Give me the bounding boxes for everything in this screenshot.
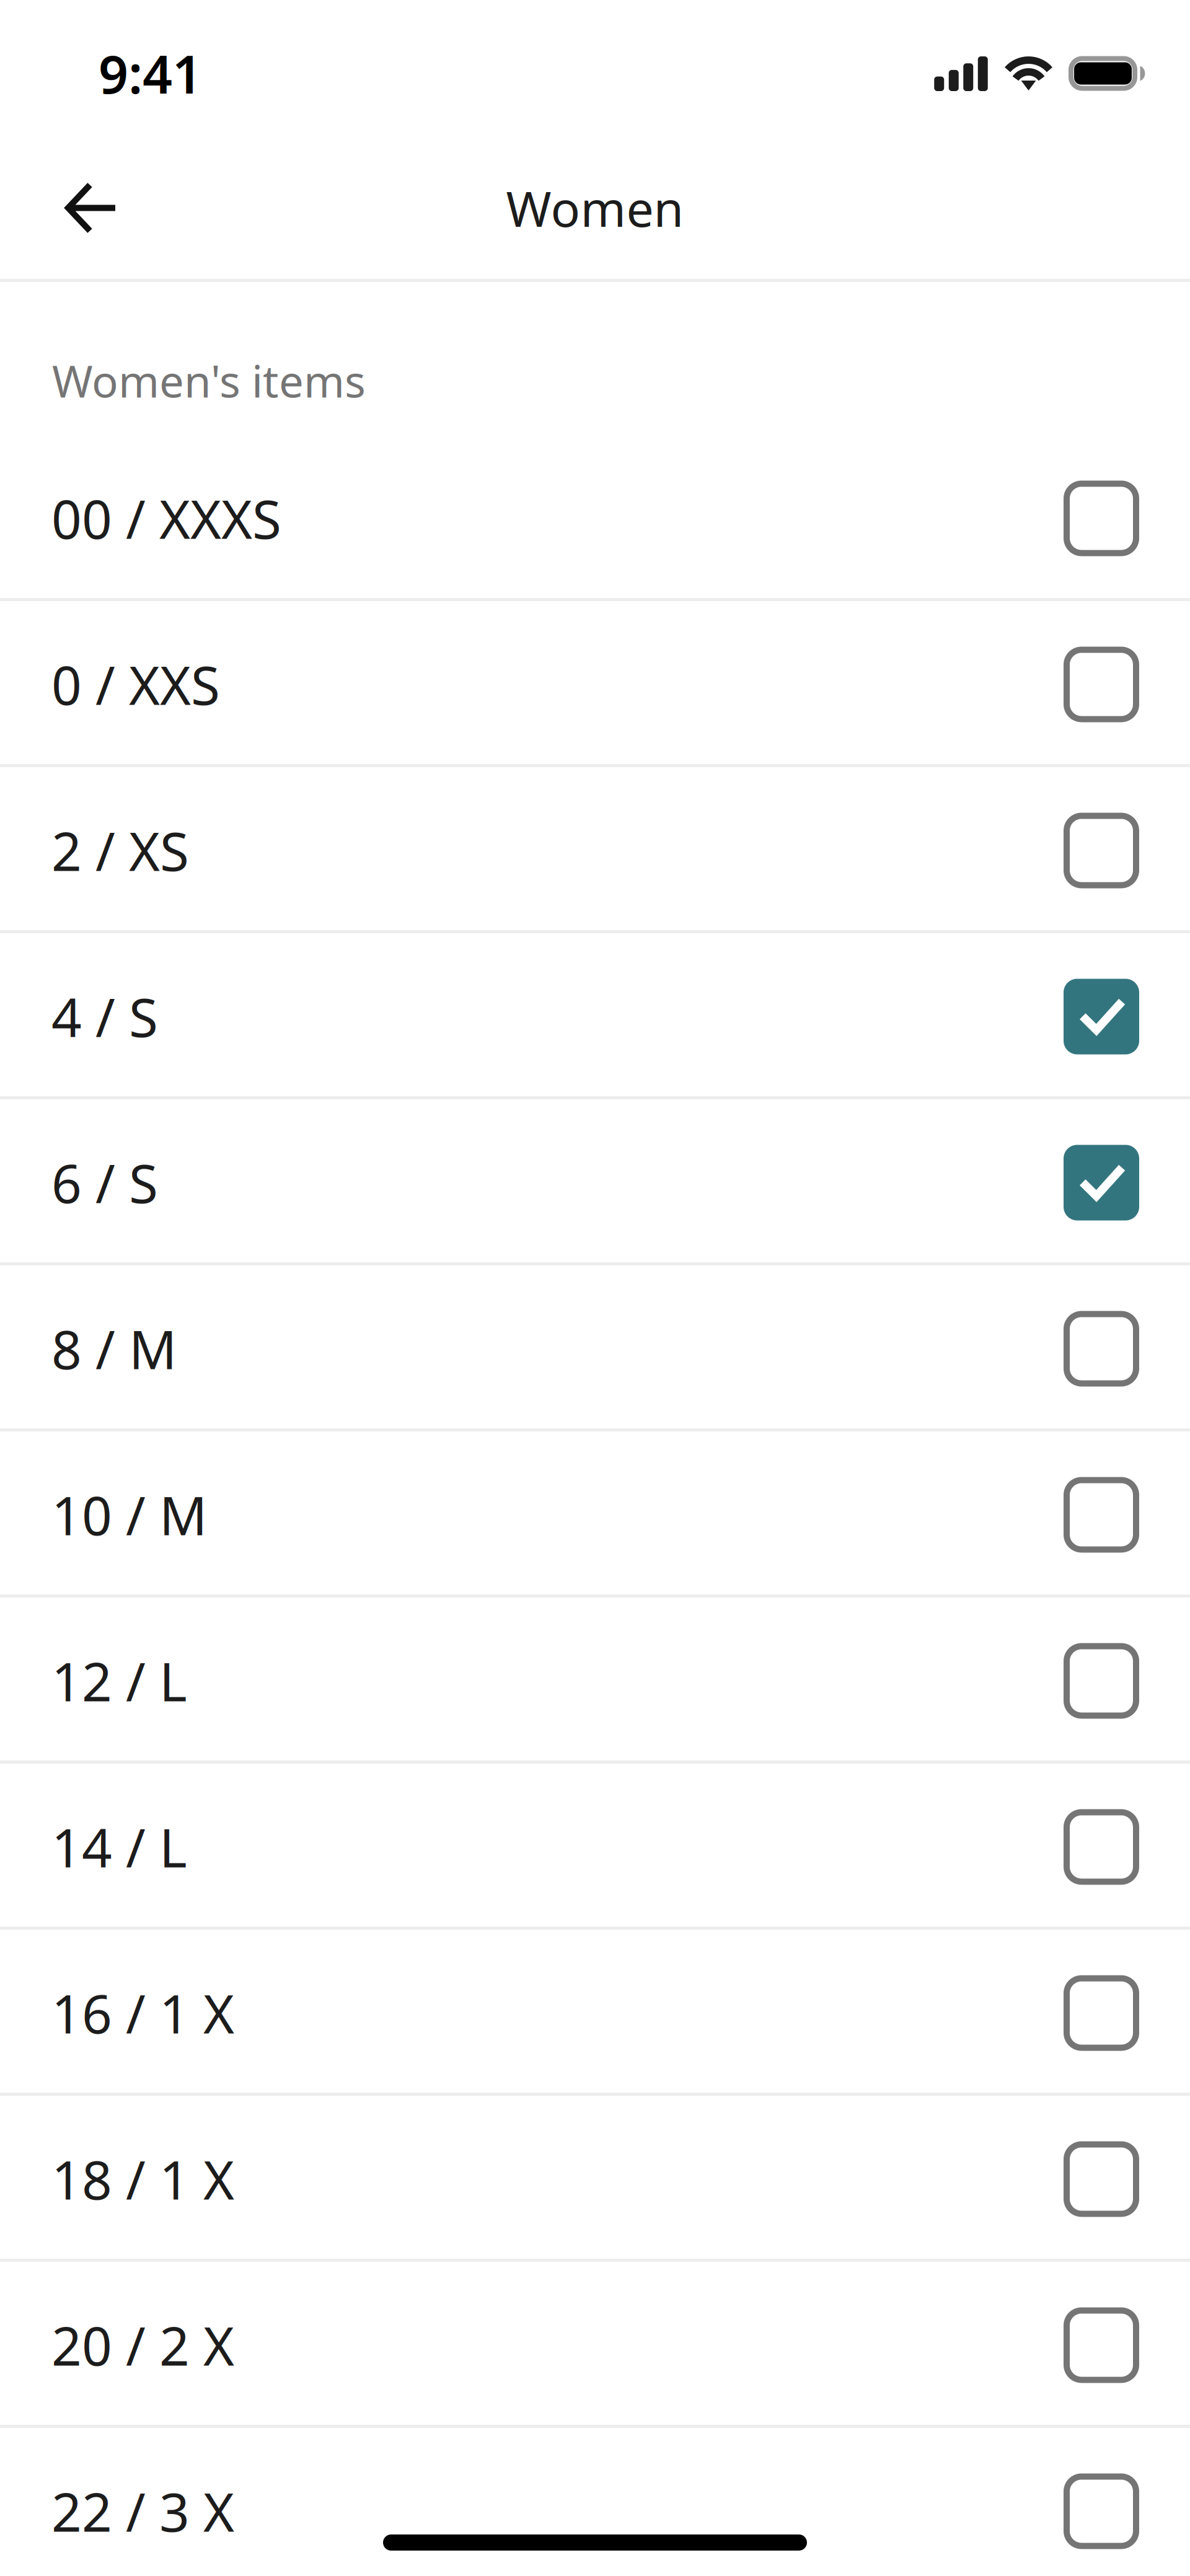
button[interactable]: 14 / L	[0, 1764, 1190, 1927]
staticText: 9:41	[99, 39, 202, 108]
staticText: 10 / M	[51, 1480, 207, 1550]
staticText: Women	[506, 176, 684, 240]
staticText: 00 / XXXS	[51, 483, 281, 553]
button[interactable]: 0 / XXS	[0, 601, 1190, 764]
staticText: 20 / 2 X	[51, 2310, 234, 2380]
staticText: 12 / L	[51, 1646, 187, 1716]
staticText: 2 / XS	[51, 815, 189, 886]
staticText: Women's items	[52, 351, 366, 410]
button[interactable]: 8 / M	[0, 1265, 1190, 1428]
staticText: 16 / 1 X	[51, 1978, 234, 2048]
staticText: 4 / S	[51, 981, 158, 1052]
button[interactable]: 10 / M	[0, 1431, 1190, 1594]
button[interactable]: 00 / XXXS	[0, 435, 1190, 598]
button[interactable]: 20 / 2 X	[0, 2262, 1190, 2425]
button[interactable]: 22 / 3 X	[0, 2428, 1190, 2576]
button[interactable]: 18 / 1 X	[0, 2096, 1190, 2259]
staticText: 18 / 1 X	[51, 2144, 234, 2214]
staticText: 22 / 3 X	[51, 2476, 234, 2546]
staticText: 14 / L	[51, 1812, 187, 1882]
button[interactable]: 2 / XS	[0, 767, 1190, 930]
button[interactable]: Back	[0, 147, 186, 269]
staticText: 6 / S	[51, 1148, 158, 1218]
staticText: 8 / M	[51, 1314, 177, 1384]
button[interactable]: 16 / 1 X	[0, 1930, 1190, 2093]
button[interactable]: 6 / S	[0, 1099, 1190, 1262]
button[interactable]: 4 / S	[0, 933, 1190, 1096]
button[interactable]: 12 / L	[0, 1598, 1190, 1761]
staticText: 0 / XXS	[51, 649, 220, 720]
